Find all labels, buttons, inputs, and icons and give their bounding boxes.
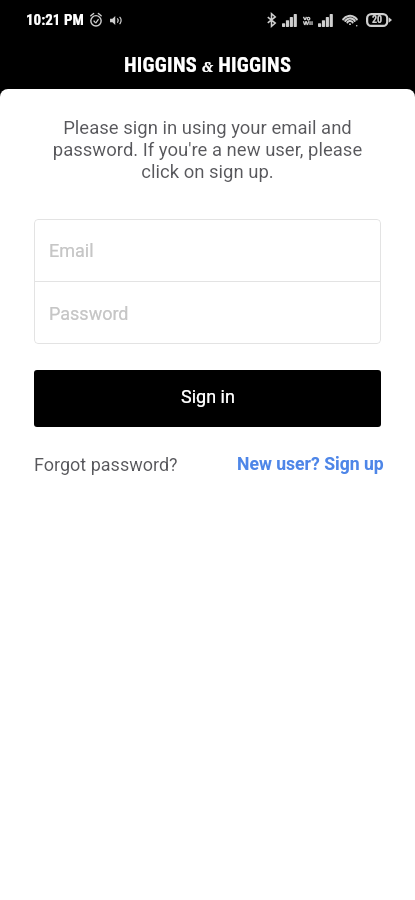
staticText: Please sign in using your email and pass… bbox=[24, 117, 391, 183]
staticText: Email bbox=[49, 240, 94, 261]
staticText: 10:21 PM bbox=[26, 11, 84, 29]
staticText: Forgot password? bbox=[34, 454, 178, 475]
staticText: 20 bbox=[372, 14, 383, 26]
staticText: Sign in bbox=[181, 386, 235, 407]
button[interactable]: New user? Sign up bbox=[237, 454, 384, 475]
button[interactable]: Forgot password? bbox=[34, 454, 178, 475]
button[interactable]: Sign in bbox=[34, 370, 381, 427]
staticText: HIGGINS & HIGGINS bbox=[124, 53, 292, 77]
button[interactable]: Password bbox=[34, 282, 381, 344]
staticText: New user? Sign up bbox=[237, 454, 384, 475]
button[interactable]: Email bbox=[34, 219, 381, 281]
staticText: Password bbox=[49, 303, 129, 324]
